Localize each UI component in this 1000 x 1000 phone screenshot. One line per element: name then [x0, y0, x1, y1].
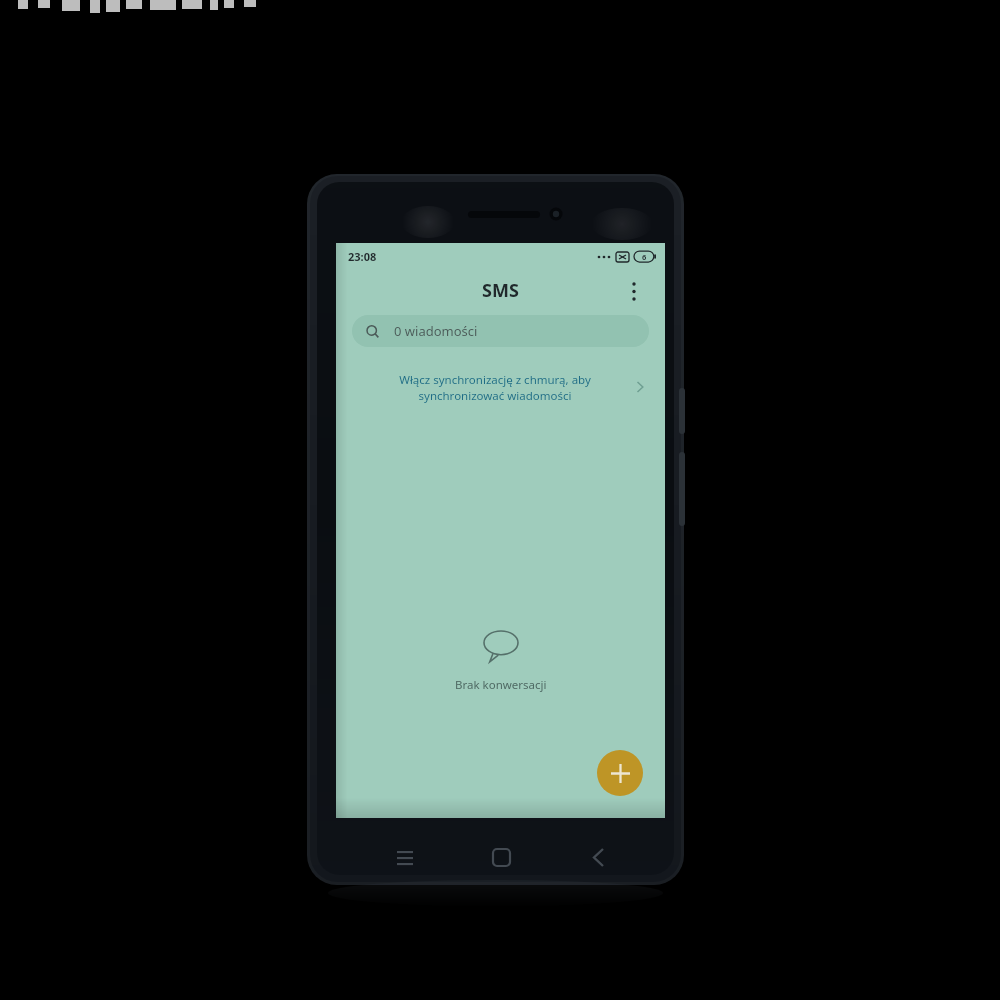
staticText: Włącz synchronizację z chmurą, aby synch… — [380, 372, 610, 403]
button[interactable]: Włącz synchronizację z chmurą, aby synch… — [336, 365, 665, 409]
staticText: 23:08 — [348, 249, 377, 264]
button[interactable]: More options — [619, 275, 649, 305]
staticText: 0 wiadomości — [394, 322, 478, 340]
button[interactable]: New conversation — [597, 750, 643, 796]
staticText: Brak konwersacji — [455, 677, 547, 693]
staticText: SMS — [482, 278, 519, 303]
button[interactable]: 0 wiadomości — [352, 315, 649, 347]
staticText: 6 — [642, 252, 647, 262]
